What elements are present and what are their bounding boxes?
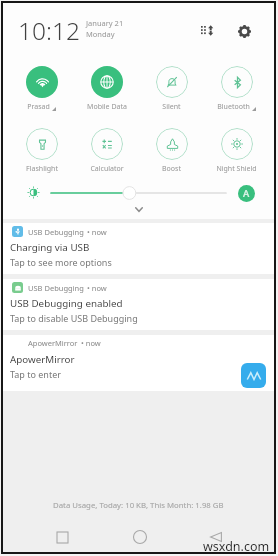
button[interactable]: Night Shield <box>204 128 269 174</box>
button[interactable]: 10:12 <box>18 14 80 47</box>
button[interactable]: Flashlight <box>9 128 74 174</box>
staticText: Boost <box>162 164 181 174</box>
staticText: wsxdn.com <box>203 538 270 555</box>
button[interactable]: January 21 <box>86 18 124 39</box>
button[interactable]: Expand <box>127 203 151 215</box>
staticText: USB Debugging enabled <box>10 297 123 310</box>
staticText: Prasad <box>27 102 50 112</box>
staticText: Mobile Data <box>87 102 127 112</box>
staticText: Tap to see more options <box>10 256 112 268</box>
button[interactable]: Boost <box>139 128 204 174</box>
staticText: USB Debugging <box>28 283 84 293</box>
button[interactable]: Recents <box>49 524 75 550</box>
button[interactable]: Calculator <box>74 128 139 174</box>
staticText: January 21 <box>86 18 124 28</box>
button[interactable]: USB Debugging <box>3 279 274 330</box>
button[interactable]: Bluetooth <box>204 66 269 112</box>
button[interactable]: A <box>238 185 255 202</box>
button[interactable]: USB Debugging <box>3 223 274 274</box>
staticText: Tap to disable USB Debugging <box>10 312 138 324</box>
staticText: Calculator <box>90 164 124 174</box>
staticText: Monday <box>86 29 115 39</box>
staticText: Charging via USB <box>10 241 90 254</box>
staticText: A <box>243 187 250 200</box>
staticText: Data Usage, Today: 10 KB, This Month: 1.… <box>53 500 224 511</box>
staticText: USB Debugging <box>28 227 84 237</box>
staticText: ApowerMirror <box>28 338 78 348</box>
staticText: Tap to enter <box>10 368 61 380</box>
button[interactable]: Silent <box>139 66 204 112</box>
staticText: • now <box>87 283 107 293</box>
staticText: • now <box>81 338 101 348</box>
staticText: 10:12 <box>18 14 80 47</box>
button[interactable]: Data Usage, Today: 10 KB, This Month: 1.… <box>3 498 274 513</box>
button[interactable]: ApowerMirror <box>3 335 274 391</box>
staticText: Bluetooth <box>217 102 250 112</box>
staticText: • now <box>87 227 107 237</box>
staticText: Silent <box>162 102 181 112</box>
staticText: Flashlight <box>26 164 58 174</box>
button[interactable]: Prasad <box>9 66 74 112</box>
button[interactable]: Back <box>203 524 229 550</box>
button[interactable]: Settings <box>231 18 257 44</box>
button[interactable]: ApowerMirror <box>241 363 266 388</box>
staticText: ApowerMirror <box>10 353 75 366</box>
staticText: Night Shield <box>216 164 257 174</box>
button[interactable]: Home <box>127 524 153 550</box>
button[interactable]: Edit tiles <box>195 19 219 43</box>
button[interactable]: Mobile Data <box>74 66 139 112</box>
